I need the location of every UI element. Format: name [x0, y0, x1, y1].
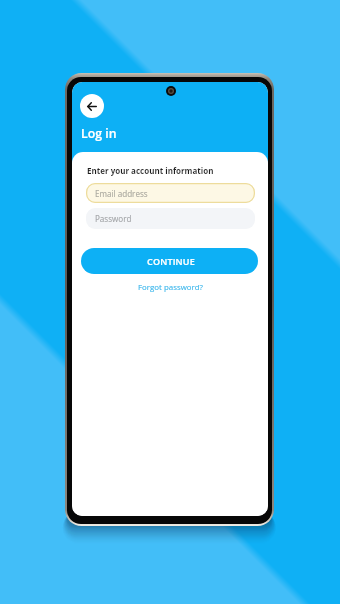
button[interactable]: Password	[86, 208, 255, 229]
staticText: Forgot password?	[138, 282, 203, 293]
button[interactable]: CONTINUE	[81, 248, 258, 274]
staticText: Email address	[95, 188, 148, 199]
button[interactable]: Email address	[86, 183, 255, 203]
staticText: Log in	[81, 125, 117, 142]
button[interactable]: Forgot password?	[72, 282, 268, 294]
staticText: Enter your account information	[87, 165, 214, 176]
button[interactable]: Back	[80, 94, 104, 118]
staticText: Password	[95, 213, 132, 224]
staticText: CONTINUE	[147, 255, 195, 267]
